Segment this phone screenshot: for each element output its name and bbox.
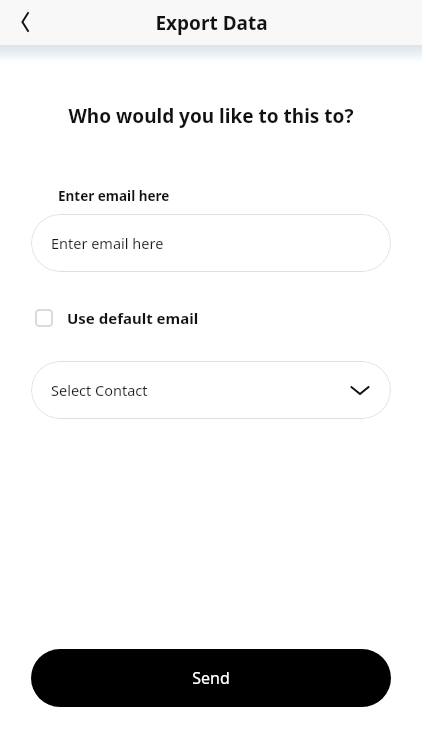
- staticText: Who would you like to this to?: [20, 103, 402, 129]
- button[interactable]: Use default email: [31, 304, 203, 332]
- staticText: Enter email here: [51, 233, 164, 253]
- button[interactable]: Select Contact: [31, 361, 391, 419]
- staticText: Use default email: [67, 308, 199, 328]
- staticText: Select Contact: [51, 380, 148, 400]
- staticText: Enter email here: [58, 187, 170, 205]
- staticText: Send: [192, 667, 230, 689]
- button[interactable]: Enter email here: [31, 214, 391, 272]
- button[interactable]: Send: [31, 649, 391, 707]
- button[interactable]: Back: [6, 2, 46, 42]
- staticText: Export Data: [155, 10, 268, 36]
